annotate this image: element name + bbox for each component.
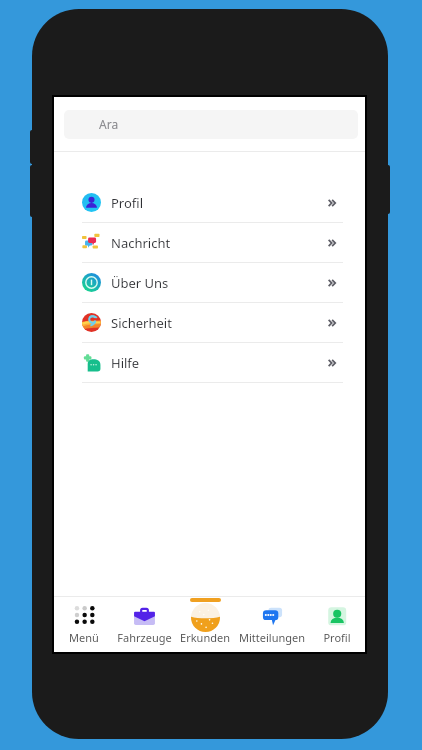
other: Erkunden <box>191 603 220 632</box>
button[interactable]: Sicherheit <box>54 303 365 343</box>
staticText: Nachricht <box>111 234 171 252</box>
other: Profil <box>323 603 352 632</box>
staticText: Menü <box>69 630 99 645</box>
staticText: Profil <box>323 630 351 645</box>
staticText: Über Uns <box>111 274 169 292</box>
staticText: Fahrzeuge <box>117 630 172 645</box>
staticText: Sicherheit <box>111 314 172 332</box>
staticText: Mitteilungen <box>239 630 305 645</box>
button[interactable]: Mitteilungen <box>235 597 309 652</box>
button[interactable]: Erkunden <box>175 597 235 652</box>
button[interactable]: Fahrzeuge <box>114 597 175 652</box>
button[interactable]: Über Uns <box>54 263 365 303</box>
button[interactable]: Profil <box>309 597 365 652</box>
staticText: Hilfe <box>111 354 140 372</box>
staticText: Profil <box>111 194 144 212</box>
staticText: Erkunden <box>180 630 230 645</box>
button[interactable]: Profil <box>54 183 365 223</box>
staticText: Ara <box>99 116 119 132</box>
other: Fahrzeuge <box>130 603 159 632</box>
button[interactable]: Nachricht <box>54 223 365 263</box>
other: Mitteilungen <box>258 603 287 632</box>
button[interactable]: Menü <box>54 597 114 652</box>
button[interactable]: Hilfe <box>54 343 365 383</box>
button[interactable]: Ara <box>64 110 358 139</box>
other: Menü <box>70 603 99 632</box>
